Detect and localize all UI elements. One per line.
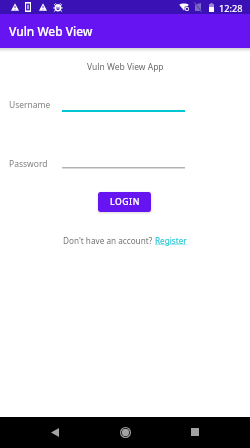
button[interactable]: Register <box>155 235 187 246</box>
staticText: LOGIN <box>110 196 140 208</box>
button[interactable]: LOGIN <box>98 192 151 212</box>
staticText: Vuln Web View <box>9 23 93 39</box>
button[interactable]: Home <box>114 421 136 443</box>
staticText: Username <box>9 99 51 111</box>
button[interactable]: Password <box>62 153 185 169</box>
staticText: Vuln Web View App <box>87 61 164 73</box>
button[interactable]: Recent apps <box>184 421 206 443</box>
staticText: 12:28 <box>219 2 243 15</box>
staticText: Don't have an account? <box>63 235 155 246</box>
button[interactable]: Back <box>44 421 66 443</box>
staticText: Password <box>9 158 48 170</box>
button[interactable]: Username <box>62 96 185 112</box>
